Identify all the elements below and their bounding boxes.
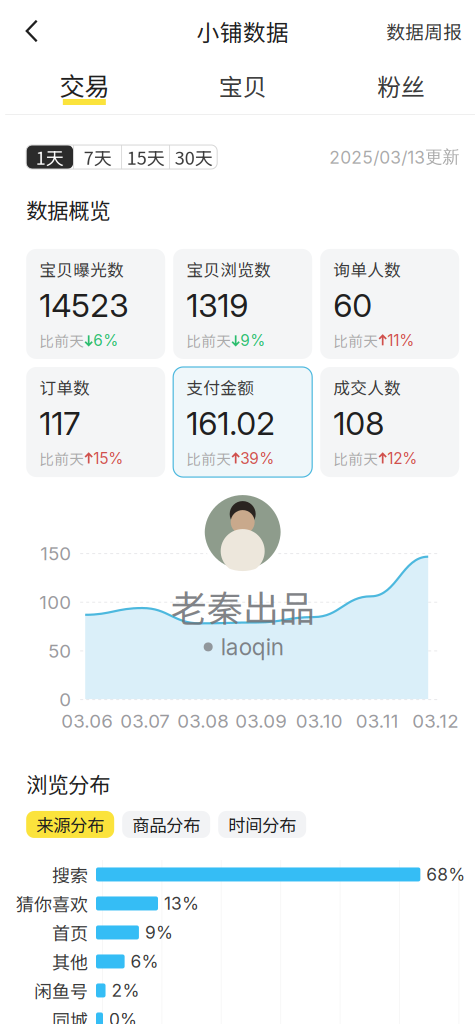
staticText: 比前天 (186, 330, 231, 351)
staticText: 108 (333, 404, 384, 443)
staticText: 50 (48, 640, 71, 662)
staticText: 30天 (175, 144, 213, 170)
button[interactable]: 返回 (5, 6, 54, 55)
staticText: 150 (40, 542, 71, 565)
staticText: 15天 (127, 144, 165, 170)
button[interactable]: 交易 (5, 62, 163, 114)
staticText: 首页 (52, 919, 88, 945)
staticText: 其他 (52, 948, 88, 974)
button[interactable]: 数据周报 (368, 3, 475, 58)
staticText: 15% (93, 449, 123, 468)
button[interactable]: 宝贝浏览数 (173, 249, 312, 359)
staticText: 宝贝曝光数 (39, 257, 124, 281)
staticText: 宝贝 (219, 68, 267, 103)
staticText: 比前天 (333, 448, 378, 469)
button[interactable]: 宝贝 (163, 62, 322, 114)
staticText: 6% (131, 951, 159, 972)
button[interactable]: 订单数 (26, 367, 165, 477)
staticText: 询单人数 (333, 257, 401, 281)
staticText: 9% (145, 922, 173, 943)
staticText: 100 (39, 591, 71, 613)
staticText: 03.09 (235, 710, 287, 732)
staticText: 03.11 (356, 710, 399, 732)
staticText: 数据周报 (386, 17, 462, 44)
staticText: 03.07 (120, 710, 170, 732)
staticText: 14523 (39, 286, 128, 325)
staticText: 03.10 (296, 710, 343, 732)
staticText: 03.12 (412, 710, 458, 732)
button[interactable]: 宝贝曝光数 (26, 249, 165, 359)
staticText: 2% (111, 980, 139, 1001)
staticText: 2025/03/13更新 (329, 146, 459, 168)
staticText: 12% (387, 449, 417, 468)
staticText: 比前天 (39, 330, 84, 351)
staticText: 小铺数据 (197, 15, 289, 47)
staticText: 7天 (84, 144, 112, 170)
button[interactable]: 粉丝 (322, 62, 475, 114)
staticText: 搜索 (52, 861, 88, 887)
button[interactable]: 支付金额 (173, 367, 312, 477)
staticText: 同城 (52, 1006, 88, 1024)
staticText: 比前天 (39, 448, 84, 469)
staticText: 交易 (59, 66, 109, 103)
staticText: 161.02 (186, 404, 275, 443)
staticText: 0% (109, 1009, 137, 1024)
staticText: 数据概览 (26, 194, 110, 225)
staticText: 03.08 (177, 710, 229, 732)
button[interactable]: 来源分布 (26, 811, 114, 838)
staticText: 宝贝浏览数 (186, 257, 271, 281)
staticText: laoqin (221, 633, 284, 661)
button[interactable]: 1天 (26, 145, 73, 169)
button[interactable]: 15天 (122, 145, 169, 169)
button[interactable]: 成交人数 (320, 367, 459, 477)
staticText: 1天 (36, 144, 64, 170)
staticText: 订单数 (39, 375, 90, 399)
staticText: 粉丝 (377, 68, 425, 103)
staticText: 浏览分布 (26, 768, 110, 799)
staticText: 68% (426, 864, 465, 885)
staticText: 比前天 (333, 330, 378, 351)
staticText: 猜你喜欢 (16, 890, 88, 916)
staticText: 时间分布 (228, 812, 296, 837)
button[interactable]: 30天 (170, 145, 217, 169)
staticText: 比前天 (186, 448, 231, 469)
staticText: 03.06 (61, 710, 113, 732)
button[interactable]: 询单人数 (320, 249, 459, 359)
staticText: 39% (240, 449, 274, 468)
staticText: 0 (59, 688, 71, 711)
staticText: 商品分布 (132, 812, 200, 837)
staticText: 闲鱼号 (34, 977, 88, 1003)
button[interactable]: 商品分布 (122, 811, 210, 838)
staticText: 成交人数 (333, 375, 401, 399)
staticText: 来源分布 (36, 812, 104, 837)
button[interactable]: 时间分布 (218, 811, 306, 838)
staticText: 老秦出品 (171, 580, 315, 632)
staticText: 117 (39, 404, 80, 443)
staticText: 1319 (186, 286, 248, 325)
staticText: 60 (333, 286, 372, 325)
staticText: 6% (93, 331, 118, 350)
staticText: 13% (164, 893, 199, 914)
staticText: 11% (387, 331, 414, 350)
staticText: 支付金额 (186, 375, 254, 399)
staticText: 9% (240, 331, 265, 350)
button[interactable]: 7天 (74, 145, 121, 169)
